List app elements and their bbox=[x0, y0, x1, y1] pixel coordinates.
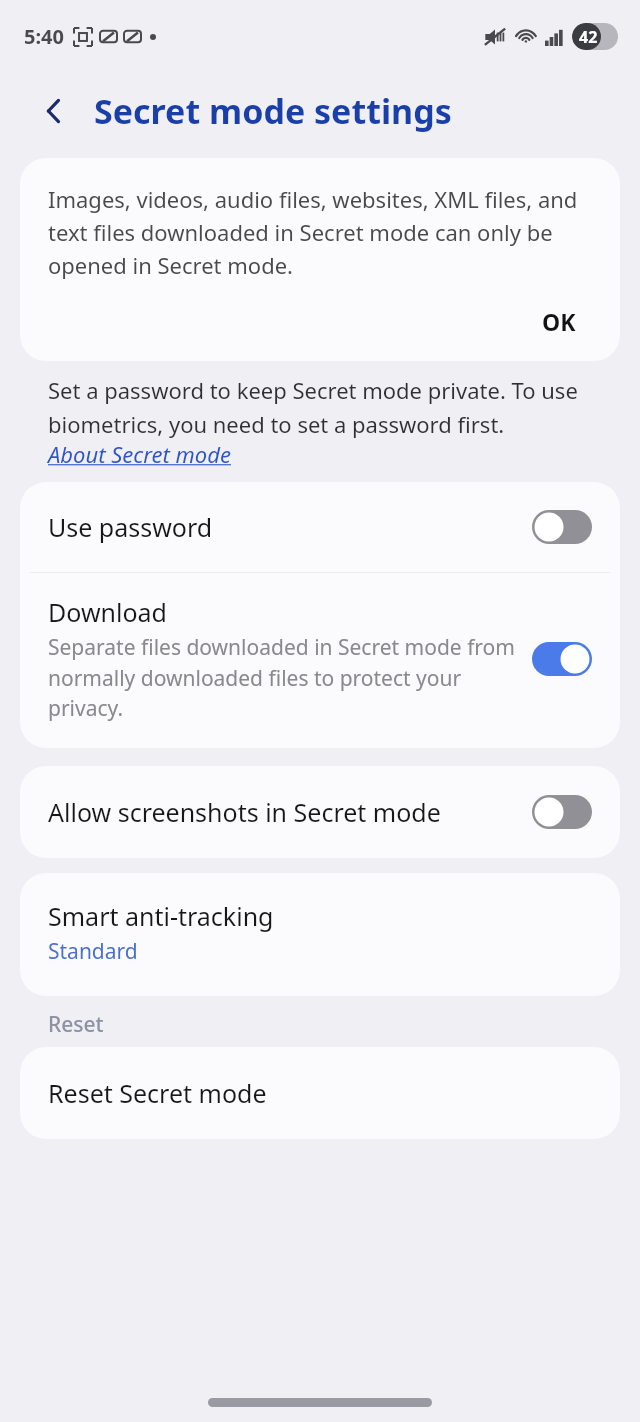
button[interactable]: Back bbox=[28, 85, 80, 137]
staticText: Standard bbox=[48, 937, 138, 966]
button[interactable]: Use password bbox=[20, 482, 620, 572]
staticText: Use password bbox=[48, 510, 532, 544]
button[interactable]: Reset Secret mode bbox=[20, 1047, 620, 1139]
staticText: OK bbox=[542, 306, 576, 337]
staticText: 42 bbox=[579, 26, 598, 48]
staticText: Download bbox=[48, 595, 167, 629]
staticText: 5:40 bbox=[24, 23, 64, 50]
staticText: Smart anti-tracking bbox=[48, 899, 274, 933]
button[interactable]: Smart anti-tracking bbox=[20, 873, 620, 996]
staticText: Reset bbox=[48, 1010, 104, 1039]
staticText: Separate files downloaded in Secret mode… bbox=[48, 633, 516, 722]
staticText: About Secret mode bbox=[48, 439, 231, 469]
staticText: Set a password to keep Secret mode priva… bbox=[48, 375, 592, 439]
staticText: Reset Secret mode bbox=[48, 1076, 267, 1110]
staticText: Images, videos, audio files, websites, X… bbox=[48, 184, 592, 280]
staticText: Secret mode settings bbox=[94, 88, 452, 134]
button[interactable]: Allow screenshots in Secret mode bbox=[20, 766, 620, 858]
button[interactable]: About Secret mode bbox=[48, 439, 231, 469]
button[interactable]: OK bbox=[526, 298, 592, 345]
staticText: Allow screenshots in Secret mode bbox=[48, 795, 532, 829]
button[interactable]: Download bbox=[20, 573, 620, 748]
